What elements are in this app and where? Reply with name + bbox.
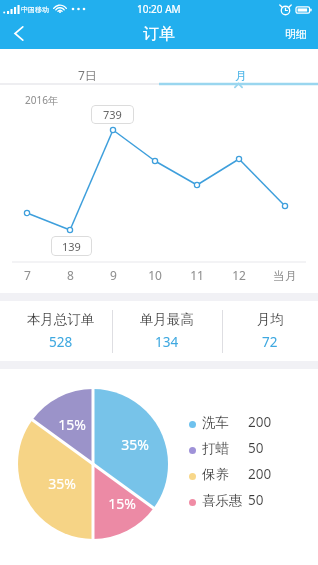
staticText: 50 [248,491,264,509]
button[interactable]: 打蜡 [189,439,264,457]
button[interactable]: 7日 [11,49,164,85]
staticText: 洗车 [202,414,229,431]
staticText: 10:20 AM [137,2,181,16]
staticText: 月均 [257,311,284,328]
button[interactable]: 明细 [274,18,318,49]
staticText: 单月最高 [140,311,194,328]
staticText: 中国移动 [21,5,49,14]
button[interactable]: 本月总订单 [9,301,112,361]
button[interactable]: 单月最高 [112,301,222,361]
staticText: 订单 [143,24,175,44]
staticText: 12 [232,267,246,283]
staticText: 15% [108,494,136,512]
staticText: 200 [248,465,272,483]
staticText: 134 [155,333,179,351]
staticText: 15% [58,415,86,433]
staticText: 528 [49,333,73,351]
staticText: 2016年 [25,93,58,107]
staticText: 35% [121,435,149,453]
staticText: 7日 [78,67,97,83]
staticText: 200 [248,413,272,431]
staticText: 139 [62,239,81,254]
staticText: 10 [148,267,162,283]
staticText: 7 [24,267,31,283]
button[interactable]: 洗车 [189,413,272,431]
staticText: 9 [110,267,117,283]
staticText: 打蜡 [202,440,229,457]
button[interactable]: 月 [164,49,318,85]
staticText: 喜乐惠 [202,492,243,509]
staticText: 本月总订单 [27,311,95,328]
staticText: 当月 [273,268,297,283]
staticText: 50 [248,439,264,457]
staticText: 739 [103,107,122,122]
staticText: 11 [190,267,204,283]
staticText: 月 [235,68,247,83]
staticText: 明细 [285,27,307,41]
button[interactable]: 喜乐惠 [189,491,264,509]
staticText: 35% [48,474,76,492]
staticText: 保养 [202,466,229,483]
staticText: 8 [67,267,74,283]
staticText: 72 [262,333,278,351]
button[interactable]: Back [0,18,37,49]
button[interactable]: 保养 [189,465,272,483]
button[interactable]: 月均 [222,301,318,361]
